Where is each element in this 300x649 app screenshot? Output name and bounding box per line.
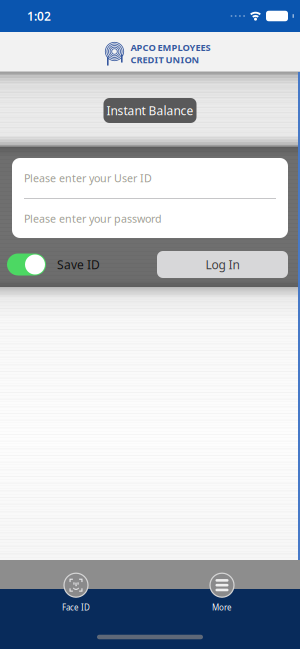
staticText: APCO EMPLOYEES	[130, 41, 210, 53]
button[interactable]: Save ID	[7, 253, 100, 275]
button[interactable]: Instant Balance	[103, 98, 196, 123]
secureTextField[interactable]: Please enter your password	[24, 211, 288, 226]
staticText: Instant Balance	[106, 102, 193, 118]
button[interactable]: More	[210, 573, 234, 613]
staticText: Save ID	[57, 256, 100, 272]
staticText: Please enter your password	[24, 211, 162, 226]
staticText: Log In	[205, 256, 239, 272]
button[interactable]: Log In	[157, 251, 288, 278]
staticText: CREDIT UNION	[130, 53, 199, 66]
staticText: More	[212, 602, 232, 613]
button[interactable]: Face ID	[62, 573, 90, 613]
staticText: 1:02	[27, 8, 51, 24]
staticText: Please enter your User ID	[24, 171, 152, 185]
staticText: Face ID	[62, 602, 90, 613]
textField[interactable]: Please enter your User ID	[24, 171, 288, 185]
